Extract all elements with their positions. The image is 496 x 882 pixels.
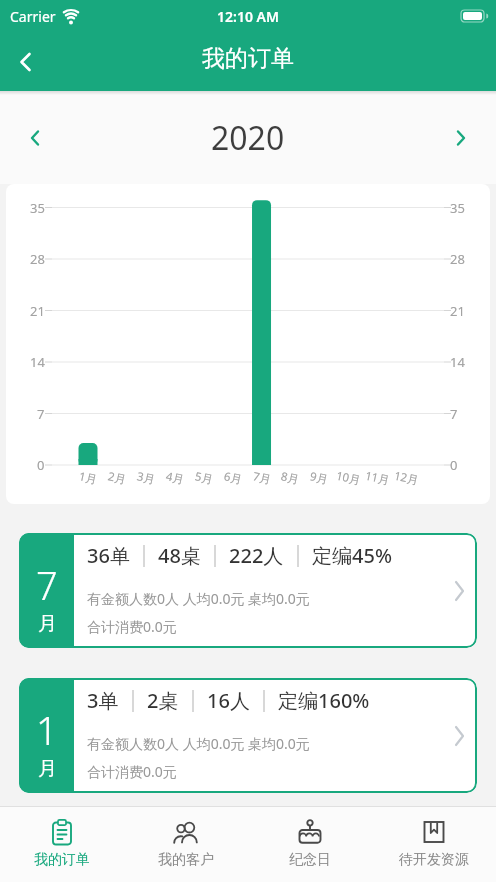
button[interactable]: 待开发资源	[372, 807, 496, 882]
staticText: 3单	[87, 687, 119, 714]
staticText: 定编160%	[278, 687, 370, 714]
staticText: 12月	[393, 468, 420, 488]
button[interactable]: 1	[19, 678, 477, 793]
staticText: 1	[36, 704, 58, 756]
staticText: 21	[450, 302, 465, 320]
staticText: 我的订单	[34, 851, 90, 869]
staticText: 28	[30, 250, 45, 268]
staticText: 6月	[222, 468, 244, 488]
staticText: 36单	[87, 542, 130, 569]
staticText: Carrier	[10, 7, 56, 26]
staticText: 16人	[207, 687, 250, 714]
staticText: 14	[30, 353, 45, 371]
staticText: 12:10 AM	[217, 7, 279, 26]
staticText: 月	[38, 757, 57, 781]
staticText: 9月	[308, 468, 330, 488]
staticText: 7	[450, 405, 458, 423]
staticText: 1月	[77, 468, 99, 488]
staticText: 28	[450, 250, 465, 268]
staticText: 48桌	[158, 542, 201, 569]
staticText: 14	[450, 353, 465, 371]
button[interactable]	[446, 123, 476, 153]
staticText: 35	[450, 199, 465, 217]
button[interactable]: 7	[19, 533, 477, 648]
staticText: 5月	[193, 468, 215, 488]
staticText: 定编45%	[312, 542, 392, 569]
button[interactable]	[8, 45, 42, 79]
staticText: 有金额人数0人 人均0.0元 桌均0.0元	[87, 589, 310, 608]
staticText: 4月	[164, 468, 186, 488]
staticText: 合计消费0.0元	[87, 762, 177, 781]
staticText: 10月	[335, 468, 362, 488]
button[interactable]: 我的客户	[124, 807, 248, 882]
staticText: 0	[450, 456, 458, 474]
staticText: 7	[36, 559, 58, 611]
staticText: 222人	[229, 542, 284, 569]
staticText: 我的客户	[158, 851, 214, 869]
staticText: 2020	[211, 116, 285, 160]
staticText: 月	[38, 612, 57, 636]
staticText: 21	[30, 302, 45, 320]
staticText: 有金额人数0人 人均0.0元 桌均0.0元	[87, 734, 310, 753]
staticText: 2桌	[147, 687, 179, 714]
staticText: 合计消费0.0元	[87, 617, 177, 636]
button[interactable]	[20, 123, 50, 153]
button[interactable]: 纪念日	[248, 807, 372, 882]
staticText: 我的订单	[202, 44, 294, 73]
staticText: 11月	[364, 468, 391, 488]
button[interactable]: 我的订单	[0, 807, 124, 882]
staticText: 8月	[279, 468, 301, 488]
staticText: 纪念日	[289, 851, 331, 869]
staticText: 3月	[135, 468, 157, 488]
staticText: 35	[30, 199, 45, 217]
staticText: 7	[37, 405, 45, 423]
staticText: 7月	[251, 468, 273, 488]
staticText: 待开发资源	[399, 851, 469, 869]
staticText: 2月	[106, 468, 128, 488]
staticText: 0	[37, 456, 45, 474]
